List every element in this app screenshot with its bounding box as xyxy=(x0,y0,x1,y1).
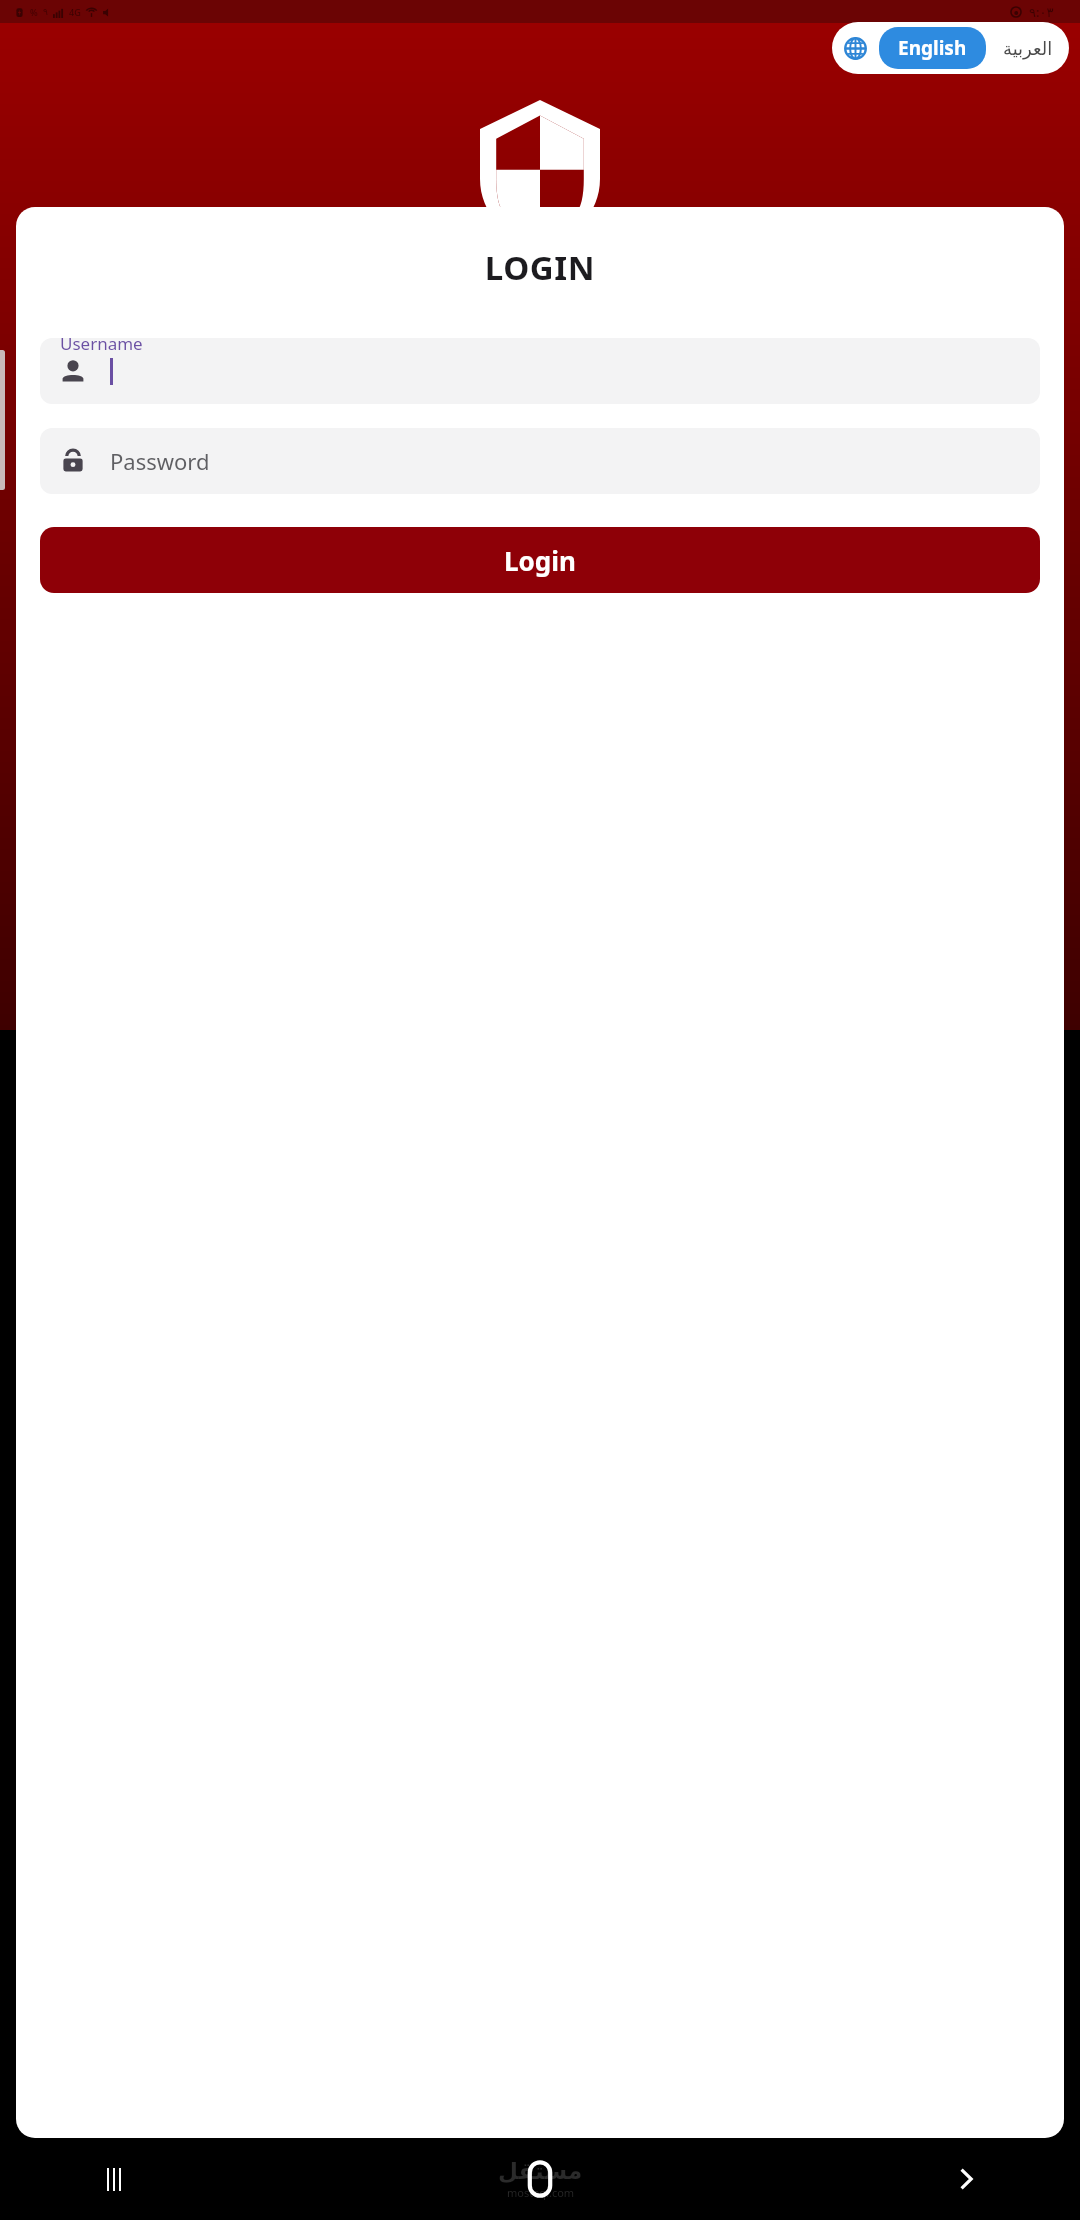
staticText: Username xyxy=(60,332,143,355)
button[interactable]: Recent apps xyxy=(92,2157,136,2201)
button[interactable]: English xyxy=(879,27,986,69)
button[interactable]: Login xyxy=(40,527,1040,593)
staticText: Password xyxy=(110,446,210,476)
staticText: مستقل xyxy=(498,2158,583,2185)
button[interactable]: Home xyxy=(525,2160,555,2198)
staticText: LOGIN xyxy=(16,245,1064,290)
staticText: Login xyxy=(504,543,576,578)
staticText: English xyxy=(898,35,967,61)
button[interactable]: Password xyxy=(40,428,1040,494)
other: Language xyxy=(844,37,867,60)
button[interactable]: Language xyxy=(832,22,1069,74)
staticText: 4G xyxy=(69,6,81,18)
button[interactable]: Back xyxy=(944,2157,988,2201)
staticText: % xyxy=(30,6,38,18)
staticText: ٩ xyxy=(43,7,48,17)
staticText: ٩:٠٣ xyxy=(1029,3,1054,21)
staticText: mostaql.com xyxy=(507,2185,575,2200)
button[interactable] xyxy=(40,338,1040,404)
staticText: العربية xyxy=(1003,38,1053,59)
button[interactable]: العربية xyxy=(999,32,1057,65)
